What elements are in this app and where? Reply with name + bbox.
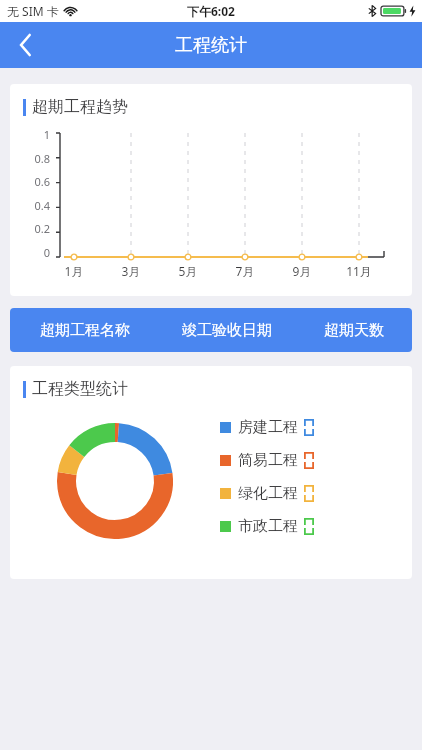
staticText: 0.6 <box>34 174 50 186</box>
staticText: 简易工程 <box>238 451 298 470</box>
staticText: 1月 <box>59 263 89 279</box>
button[interactable]: 超期工程趋势 <box>10 84 412 296</box>
staticText: 超期天数 <box>324 321 384 340</box>
staticText: 0 <box>43 245 50 257</box>
staticText: 3月 <box>116 263 146 279</box>
button[interactable]: Back <box>0 22 50 68</box>
button[interactable]: 简易工程 <box>220 451 314 470</box>
staticText: 超期工程名称 <box>40 321 130 340</box>
staticText: 0.2 <box>34 221 50 233</box>
staticText: 绿化工程 <box>238 484 298 503</box>
staticText: 7月 <box>230 263 260 279</box>
button[interactable]: 工程类型统计 <box>10 366 412 579</box>
staticText: 5月 <box>173 263 203 279</box>
button[interactable]: 超期工程名称 <box>10 308 412 352</box>
button[interactable]: 市政工程 <box>220 517 314 536</box>
staticText: 房建工程 <box>238 418 298 437</box>
button[interactable]: 绿化工程 <box>220 484 314 503</box>
button[interactable]: 房建工程 <box>220 418 314 437</box>
staticText: 超期工程趋势 <box>32 97 128 117</box>
staticText: 市政工程 <box>238 517 298 536</box>
staticText: 竣工验收日期 <box>182 321 272 340</box>
staticText: 9月 <box>287 263 317 279</box>
staticText: 1 <box>43 127 50 139</box>
staticText: 工程类型统计 <box>32 379 128 399</box>
staticText: 0.8 <box>34 151 50 163</box>
staticText: 工程统计 <box>175 34 247 57</box>
staticText: 0.4 <box>34 198 50 210</box>
staticText: 下午6:02 <box>187 3 235 19</box>
staticText: 11月 <box>344 263 374 279</box>
staticText: 无 SIM 卡 <box>7 3 59 19</box>
